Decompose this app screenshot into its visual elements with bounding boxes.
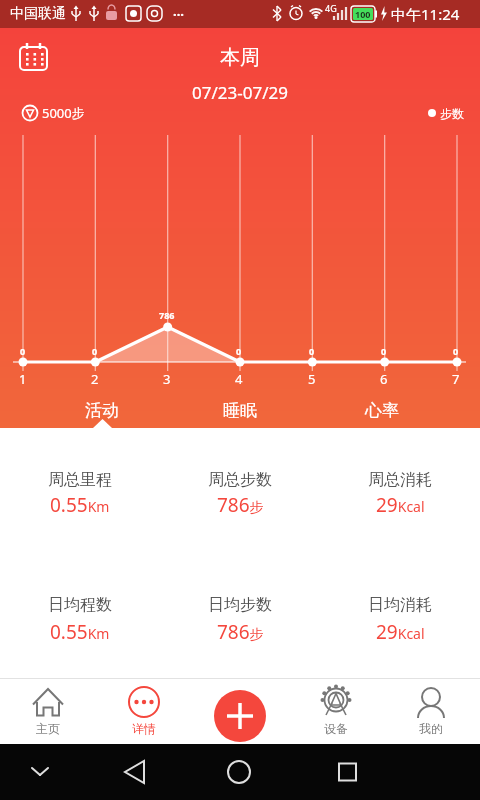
staticText: 心率 bbox=[365, 400, 399, 421]
staticText: 786 bbox=[159, 309, 175, 321]
staticText: 活动 bbox=[85, 400, 119, 421]
staticText: 0 bbox=[309, 345, 315, 357]
staticText: 100 bbox=[355, 8, 371, 20]
staticText: 5 bbox=[308, 370, 316, 386]
staticText: 0 bbox=[453, 345, 459, 357]
staticText: 29Kcal bbox=[376, 492, 425, 518]
button[interactable] bbox=[104, 680, 184, 742]
staticText: 设备 bbox=[324, 721, 348, 736]
staticText: 日均程数 bbox=[48, 595, 112, 615]
staticText: 周总里程 bbox=[48, 470, 112, 490]
staticText: 我的 bbox=[419, 721, 443, 736]
staticText: 睡眠 bbox=[223, 400, 257, 421]
staticText: 0 bbox=[236, 345, 242, 357]
staticText: 0 bbox=[381, 345, 387, 357]
button[interactable] bbox=[110, 752, 170, 792]
staticText: 0.55Km bbox=[50, 492, 110, 518]
staticText: 4G bbox=[325, 2, 337, 14]
staticText: 周总消耗 bbox=[368, 470, 432, 490]
staticText: 日均步数 bbox=[208, 595, 272, 615]
button[interactable] bbox=[62, 397, 142, 423]
button[interactable] bbox=[317, 752, 377, 792]
staticText: 6 bbox=[380, 370, 388, 386]
button[interactable] bbox=[391, 680, 471, 742]
staticText: 786步 bbox=[217, 619, 264, 645]
staticText: 步数 bbox=[440, 106, 464, 121]
staticText: 4 bbox=[235, 370, 243, 386]
staticText: 0 bbox=[20, 345, 26, 357]
staticText: 3 bbox=[163, 370, 171, 386]
staticText: 中午11:24 bbox=[391, 4, 460, 24]
button[interactable] bbox=[296, 680, 376, 742]
staticText: 主页 bbox=[36, 721, 60, 736]
staticText: 周总步数 bbox=[208, 470, 272, 490]
staticText: 07/23-07/29 bbox=[192, 81, 288, 104]
button[interactable] bbox=[200, 397, 280, 423]
staticText: 0.55Km bbox=[50, 619, 110, 645]
button[interactable] bbox=[209, 752, 269, 792]
button[interactable] bbox=[214, 690, 266, 742]
button[interactable] bbox=[8, 680, 88, 742]
staticText: 5000步 bbox=[42, 104, 85, 122]
staticText: 786步 bbox=[217, 492, 264, 518]
staticText: ... bbox=[173, 2, 184, 20]
staticText: 29Kcal bbox=[376, 619, 425, 645]
button[interactable] bbox=[12, 35, 56, 79]
staticText: 详情 bbox=[132, 721, 156, 736]
staticText: 中国联通 bbox=[10, 5, 66, 23]
staticText: 0 bbox=[92, 345, 98, 357]
staticText: 本周 bbox=[220, 45, 260, 70]
staticText: 2 bbox=[91, 370, 99, 386]
button[interactable] bbox=[342, 397, 422, 423]
staticText: 7 bbox=[452, 370, 460, 386]
staticText: 日均消耗 bbox=[368, 595, 432, 615]
staticText: 1 bbox=[19, 370, 27, 386]
